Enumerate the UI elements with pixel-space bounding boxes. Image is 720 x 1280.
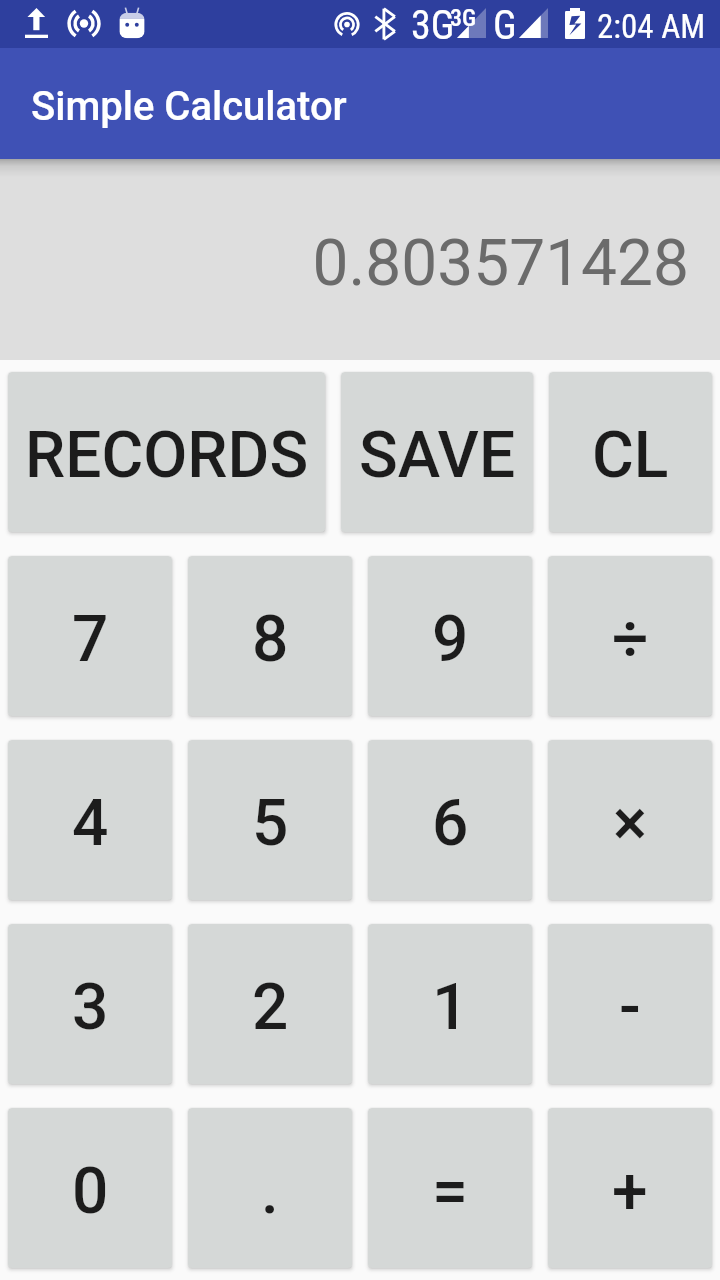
staticText: = [432,1154,468,1229]
button[interactable]: × [548,740,712,900]
other: Bluetooth on [374,8,396,40]
staticText: SAVE [359,418,516,493]
staticText: 4 [72,786,109,861]
staticText: 2:04 AM [597,7,706,46]
staticText: G [493,2,517,49]
button[interactable]: + [548,1108,712,1268]
button[interactable]: 7 [8,556,172,716]
button[interactable]: 6 [368,740,532,900]
staticText: - [619,970,641,1045]
staticText: Simple Calculator [31,83,347,130]
staticText: + [612,1154,648,1229]
button[interactable]: 8 [188,556,352,716]
button[interactable]: 5 [188,740,352,900]
staticText: CL [592,418,669,493]
staticText: 3G [450,4,477,32]
other: Wireless activity [66,9,102,38]
button[interactable]: 3 [8,924,172,1084]
staticText: 6 [432,786,469,861]
staticText: × [613,786,648,861]
staticText: 1 [432,970,469,1045]
staticText: 3G [411,2,455,49]
button[interactable]: ÷ [548,556,712,716]
staticText: . [261,1154,279,1229]
staticText: ÷ [612,602,649,677]
button[interactable]: 4 [8,740,172,900]
staticText: 5 [252,786,289,861]
button[interactable]: . [188,1108,352,1268]
other: Mobile signal, 3 bars [519,8,548,38]
other: Hotspot active [333,10,361,38]
button[interactable]: CL [549,372,712,532]
staticText: 0.803571428 [312,226,689,301]
other: Mobile signal, 2 bars [457,8,486,38]
button[interactable]: 0 [8,1108,172,1268]
staticText: 9 [432,602,469,677]
staticText: 0 [72,1154,109,1229]
button[interactable]: 2 [188,924,352,1084]
other: Upload in progress [25,8,48,38]
button[interactable]: RECORDS [8,372,325,532]
button[interactable]: 9 [368,556,532,716]
staticText: RECORDS [25,418,309,493]
staticText: 7 [72,602,109,677]
staticText: 3 [72,970,109,1045]
button[interactable]: 1 [368,924,532,1084]
other: Android system notification [117,7,147,39]
button[interactable]: SAVE [341,372,533,532]
staticText: 2 [252,970,289,1045]
button[interactable]: - [548,924,712,1084]
button[interactable]: = [368,1108,532,1268]
staticText: 8 [252,602,289,677]
other: Battery charging [565,8,585,39]
